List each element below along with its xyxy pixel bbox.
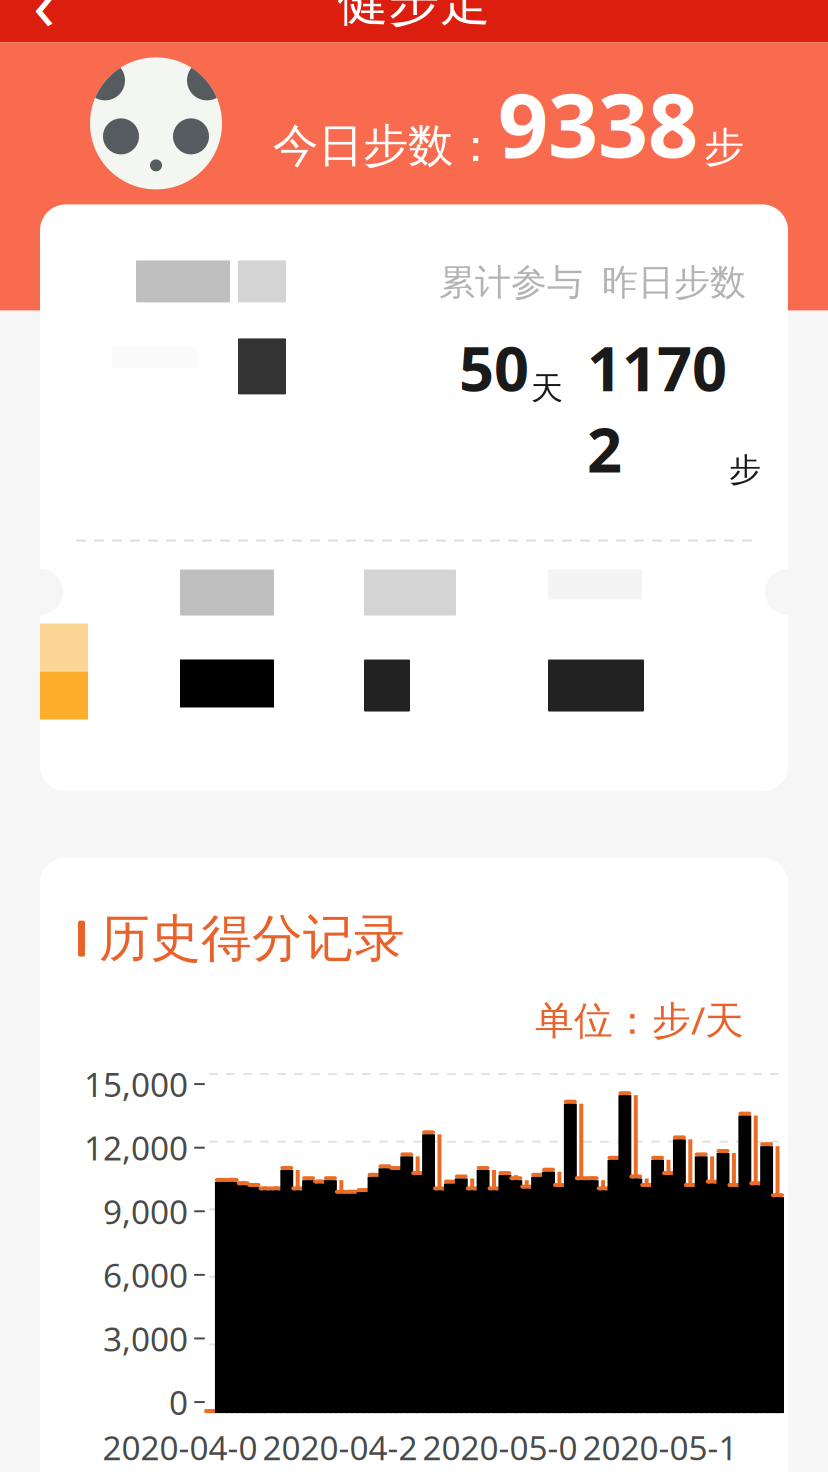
staticText: 昨日步数 <box>602 260 746 305</box>
staticText: 0 <box>169 1380 188 1424</box>
staticText: 2020-05-04 <box>422 1425 577 1472</box>
staticText: 50 <box>459 327 529 408</box>
staticText: 9,000 <box>103 1189 188 1233</box>
staticText: ‹ <box>33 0 55 50</box>
staticText: 步 <box>704 123 744 172</box>
staticText: 步 <box>729 450 761 489</box>
staticText: 15,000 <box>84 1062 188 1106</box>
staticText: 天 <box>531 369 563 408</box>
staticText: 单位：步/天 <box>535 994 744 1045</box>
staticText: 2020-05-18 <box>582 1425 737 1472</box>
staticText: 历史得分记录 <box>99 907 405 970</box>
staticText: 6,000 <box>103 1253 188 1297</box>
staticText: 健步走 <box>337 0 490 33</box>
staticText: 2020-04-20 <box>262 1425 417 1472</box>
staticText: 9338 <box>498 65 698 182</box>
button[interactable]: Back <box>0 0 88 38</box>
staticText: 3,000 <box>103 1316 188 1361</box>
staticText: 12,000 <box>84 1126 188 1170</box>
staticText: 今日步数： <box>273 118 498 174</box>
staticText: 累计参与 <box>439 260 583 305</box>
staticText: 11702 <box>587 327 727 489</box>
staticText: 2020-04-06 <box>102 1425 257 1472</box>
